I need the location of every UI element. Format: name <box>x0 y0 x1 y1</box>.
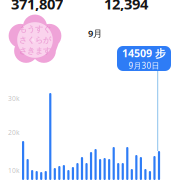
staticText: もうすぐ <box>19 24 51 34</box>
staticText: 30k <box>8 94 20 103</box>
staticText: 371,807 <box>11 0 63 13</box>
staticText: 14509 步 <box>122 46 166 60</box>
button[interactable]: 14509 步 <box>117 46 171 71</box>
staticText: 9月 <box>88 27 102 39</box>
staticText: 10k <box>8 166 20 175</box>
staticText: 20k <box>8 128 20 137</box>
staticText: さきます <box>19 46 51 56</box>
staticText: 9月30日 <box>128 60 159 71</box>
staticText: 12,394 <box>104 0 148 13</box>
staticText: さくらが <box>19 35 51 45</box>
